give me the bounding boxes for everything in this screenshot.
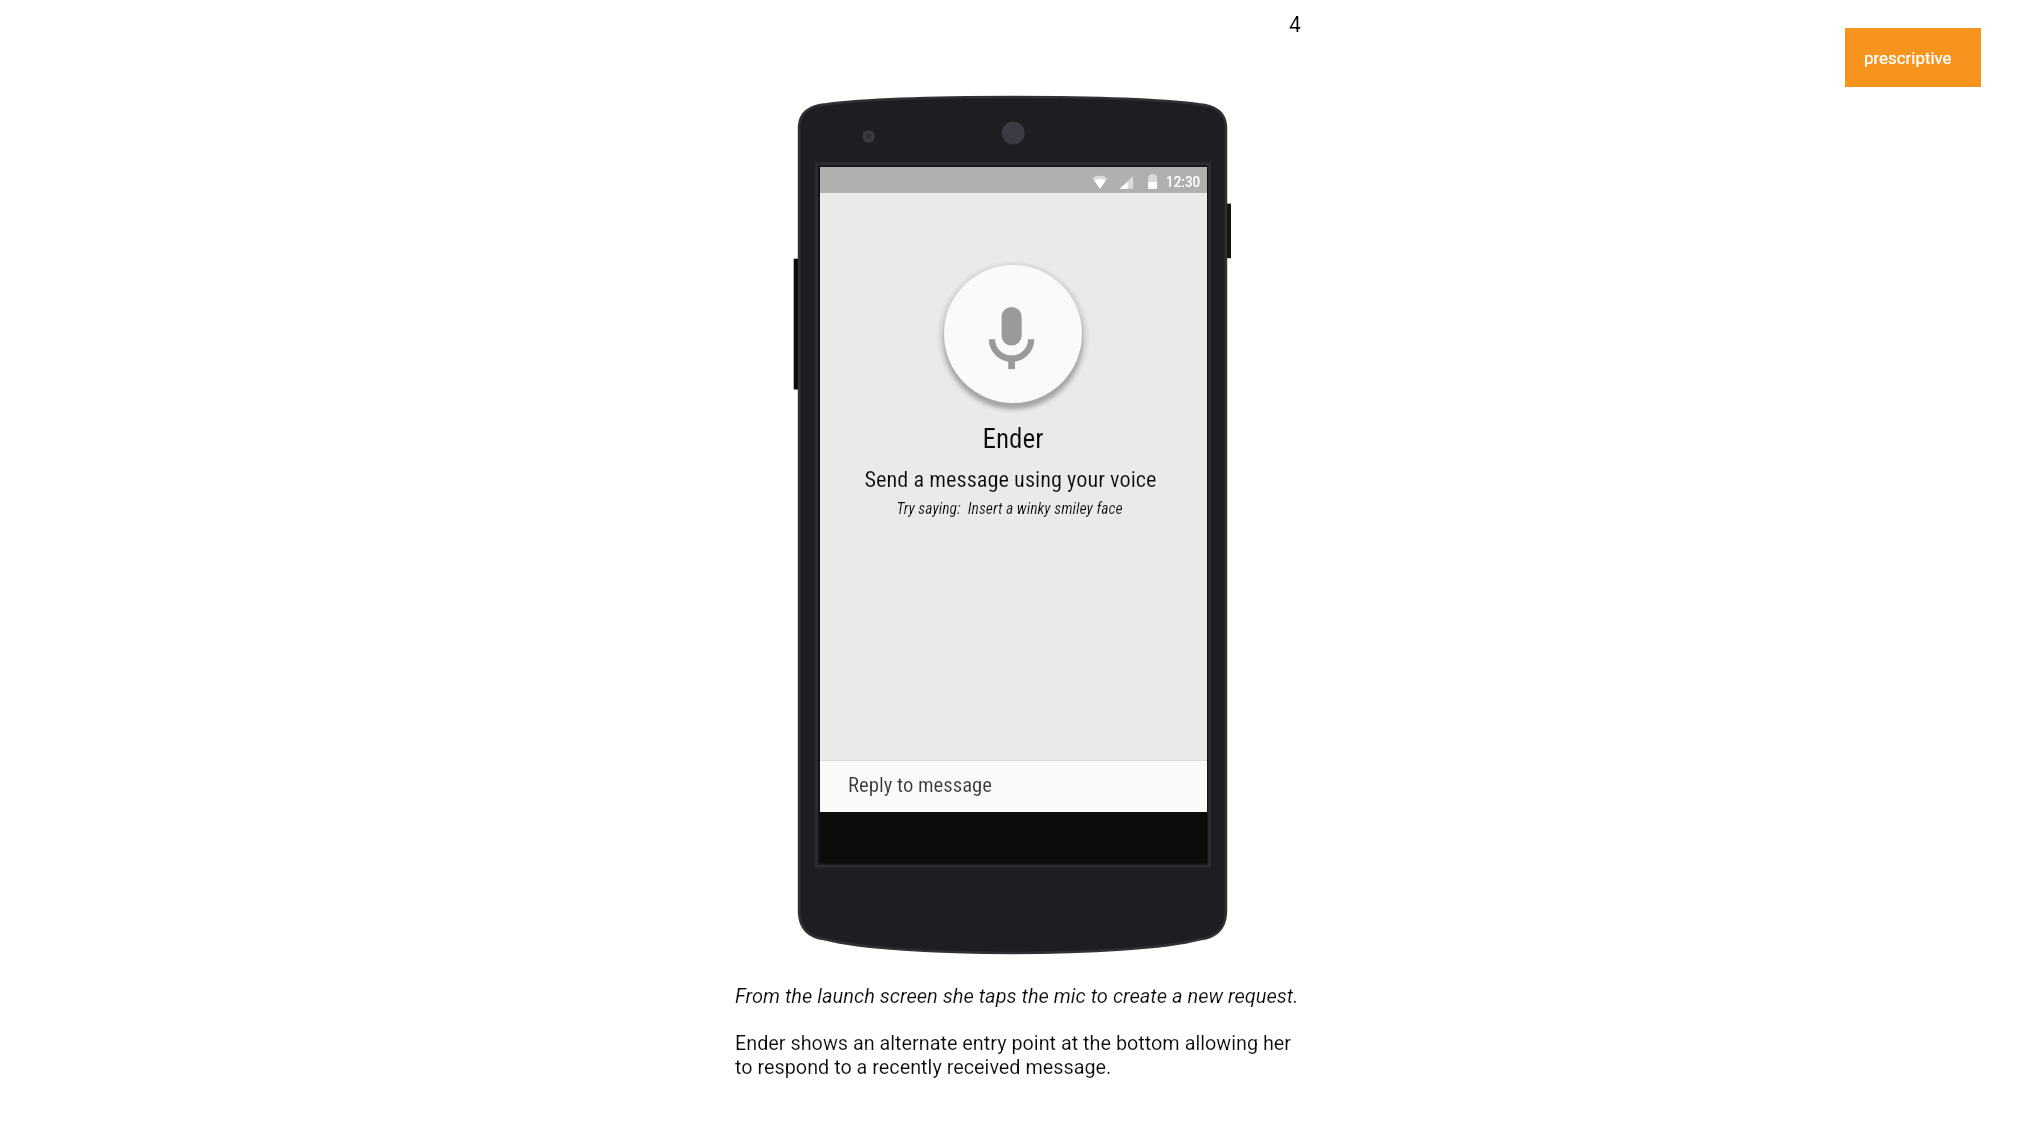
staticText: prescriptive — [1864, 48, 1952, 68]
staticText: 12:30 — [1166, 173, 1201, 191]
button[interactable]: prescriptive — [1845, 28, 1981, 87]
staticText: Try saying: Insert a winky smiley face — [896, 499, 1123, 517]
button[interactable]: Reply to message — [820, 760, 1207, 812]
staticText: From the launch screen she taps the mic … — [735, 984, 1299, 1007]
staticText: Send a message using your voice — [864, 466, 1157, 492]
button[interactable]: Microphone, tap to speak — [944, 265, 1082, 403]
staticText: 4 — [1289, 12, 1301, 37]
staticText: Ender shows an alternate entry point at … — [735, 1032, 1292, 1055]
staticText: Reply to message — [848, 773, 992, 797]
staticText: Ender — [982, 423, 1044, 455]
staticText: to respond to a recently received messag… — [735, 1056, 1112, 1079]
